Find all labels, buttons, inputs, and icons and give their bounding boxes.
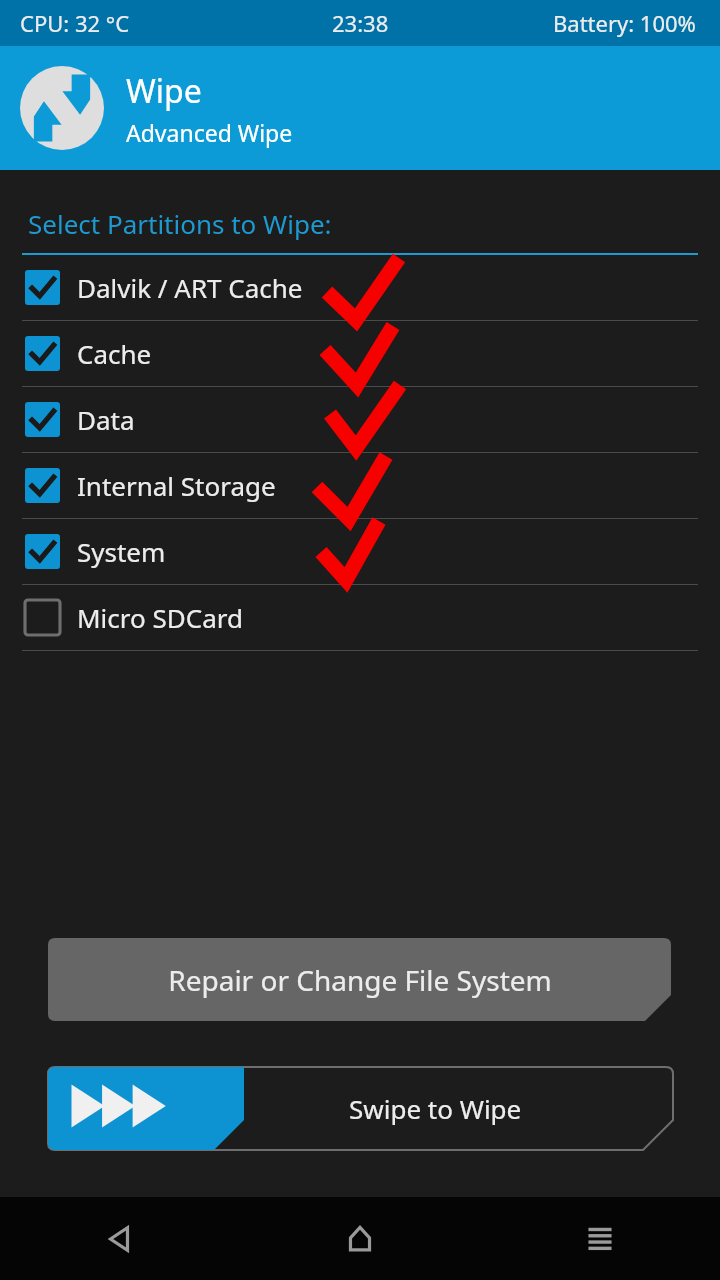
staticText: 23:38 [332,8,389,38]
staticText: Select Partitions to Wipe: [28,206,332,241]
staticText: Repair or Change File System [168,961,552,999]
staticText: CPU: 32 °C [20,8,130,38]
button[interactable]: Micro SDCard [0,585,720,650]
button[interactable]: Swipe to Wipe [48,1067,673,1150]
staticText: Cache [77,336,152,371]
staticText: Internal Storage [77,468,276,503]
button[interactable]: Cache [0,321,720,386]
staticText: Swipe to Wipe [349,1091,522,1126]
staticText: Micro SDCard [77,600,243,635]
staticText: Battery: 100% [553,8,696,38]
button[interactable]: Home [240,1197,480,1280]
staticText: Advanced Wipe [126,117,293,148]
button[interactable]: Data [0,387,720,452]
button[interactable]: Internal Storage [0,453,720,518]
button[interactable]: Back [0,1197,240,1280]
staticText: Dalvik / ART Cache [77,270,303,305]
staticText: Data [77,402,135,437]
staticText: Wipe [126,69,202,113]
button[interactable]: System [0,519,720,584]
button[interactable]: Dalvik / ART Cache [0,255,720,320]
staticText: System [77,534,166,569]
button[interactable]: Menu [480,1197,720,1280]
button[interactable]: Repair or Change File System [48,938,671,1021]
